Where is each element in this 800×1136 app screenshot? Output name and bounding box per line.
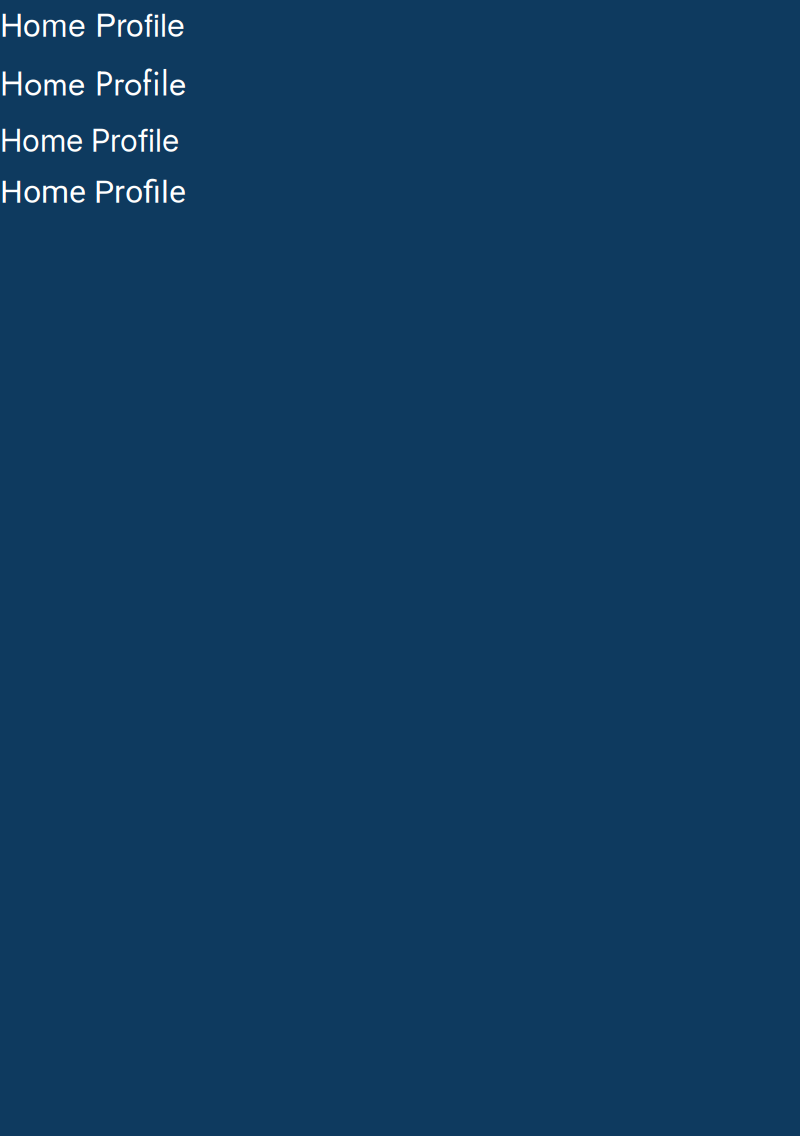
staticText: Home Profile [0,0,185,46]
staticText: Home Profile [0,60,186,108]
staticText: Home Profile [0,173,186,211]
staticText: Home Profile [0,122,179,159]
